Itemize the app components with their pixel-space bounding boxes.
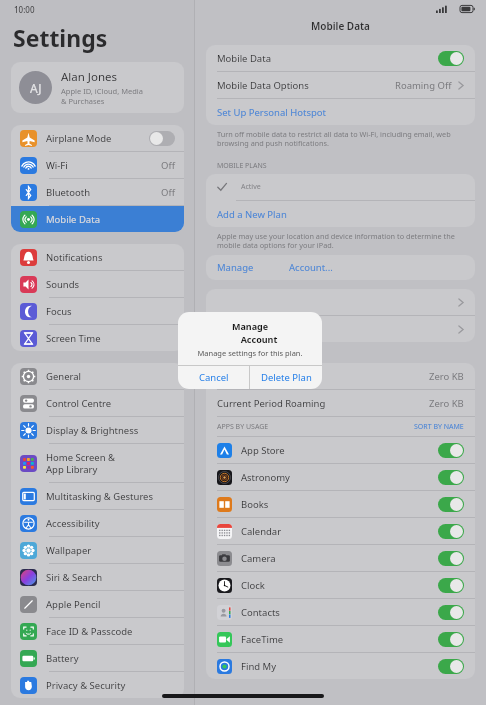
staticText: Account... — [289, 261, 333, 274]
button[interactable]: Focus — [11, 298, 184, 324]
button[interactable]: Account... — [264, 261, 343, 274]
button[interactable]: Wallpaper — [11, 537, 184, 563]
button[interactable]: Display & Brightness — [11, 417, 184, 443]
staticText: Clock — [241, 579, 438, 592]
button[interactable]: On — [438, 659, 464, 674]
button[interactable]: Calendar — [206, 518, 475, 544]
button[interactable] — [206, 316, 475, 342]
button[interactable]: Off — [149, 131, 175, 146]
staticText: Mobile Data — [46, 213, 175, 226]
staticText: Books — [241, 498, 438, 511]
staticText: Account — [204, 333, 314, 345]
button[interactable]: On — [438, 578, 464, 593]
button[interactable]: On — [438, 497, 464, 512]
staticText: Cancel — [199, 371, 229, 384]
button[interactable]: Bluetooth — [11, 179, 184, 205]
button[interactable]: Sounds — [11, 271, 184, 297]
staticText: Astronomy — [241, 471, 438, 484]
button[interactable]: On — [438, 443, 464, 458]
button[interactable]: On — [438, 551, 464, 566]
staticText: Sounds — [46, 278, 175, 291]
staticText: Multitasking & Gestures — [46, 490, 175, 503]
button[interactable]: FaceTime — [206, 626, 475, 652]
button[interactable]: Screen Time — [11, 325, 184, 351]
staticText: Manage — [186, 320, 314, 332]
staticText: Current Period — [217, 370, 429, 383]
staticText: Siri & Search — [46, 571, 175, 584]
button[interactable]: Wi-Fi — [11, 152, 184, 178]
button[interactable]: Apple Pencil — [11, 591, 184, 617]
button[interactable]: On — [438, 524, 464, 539]
staticText: Face ID & Passcode — [46, 625, 175, 638]
button[interactable]: Add a New Plan — [206, 201, 475, 227]
staticText: Off — [161, 186, 175, 199]
staticText: Manage — [217, 261, 254, 274]
staticText: Control Centre — [46, 397, 175, 410]
button[interactable]: Manage — [206, 261, 264, 274]
button[interactable]: Control Centre — [11, 390, 184, 416]
staticText: Turn off mobile data to restrict all dat… — [217, 129, 451, 149]
button[interactable]: Contacts — [206, 599, 475, 625]
button[interactable]: AJ — [11, 62, 184, 113]
button[interactable]: On — [438, 605, 464, 620]
button[interactable]: Books — [206, 491, 475, 517]
button[interactable]: Current Period — [206, 363, 475, 389]
staticText: Accessibility — [46, 517, 175, 530]
staticText: Apple ID, iCloud, Media & Purchases — [61, 86, 143, 106]
button[interactable]: Privacy & Security — [11, 672, 184, 698]
button[interactable]: Mobile Data — [11, 206, 184, 232]
button[interactable]: Active — [206, 174, 475, 200]
button[interactable]: Notifications — [11, 244, 184, 270]
button[interactable]: SORT BY NAME — [414, 422, 464, 432]
staticText: Settings — [13, 22, 108, 53]
button[interactable]: Delete Plan — [250, 366, 322, 389]
button[interactable]: Astronomy — [206, 464, 475, 490]
button[interactable]: Mobile Data — [206, 45, 475, 71]
button[interactable]: Cancel — [178, 366, 249, 389]
button[interactable]: On — [438, 632, 464, 647]
staticText: Privacy & Security — [46, 679, 175, 692]
button[interactable]: Accessibility — [11, 510, 184, 536]
staticText: Battery — [46, 652, 175, 665]
button[interactable]: Camera — [206, 545, 475, 571]
button[interactable]: Airplane Mode — [11, 125, 184, 151]
button[interactable]: Home Screen & App Library — [11, 444, 184, 482]
staticText: Camera — [241, 552, 438, 565]
staticText: Home Screen & App Library — [46, 451, 175, 476]
staticText: Wallpaper — [46, 544, 175, 557]
staticText: Find My — [241, 660, 438, 673]
button[interactable]: Set Up Personal Hotspot — [206, 99, 475, 125]
button[interactable]: Battery — [11, 645, 184, 671]
staticText: AJ — [30, 80, 42, 96]
button[interactable]: App Store — [206, 437, 475, 463]
staticText: APPS BY USAGE — [217, 422, 414, 432]
staticText: Set Up Personal Hotspot — [217, 106, 326, 119]
staticText: Bluetooth — [46, 186, 161, 199]
button[interactable]: Find My — [206, 653, 475, 679]
button[interactable]: Mobile Data Options — [206, 72, 475, 98]
button[interactable] — [206, 289, 475, 315]
staticText: Zero KB — [429, 370, 464, 383]
button[interactable]: On — [438, 470, 464, 485]
staticText: Zero KB — [429, 397, 464, 410]
button[interactable]: Current Period Roaming — [206, 390, 475, 416]
staticText: Screen Time — [46, 332, 175, 345]
staticText: Notifications — [46, 251, 175, 264]
staticText: App Store — [241, 444, 438, 457]
staticText: Apple may use your location and device i… — [217, 231, 455, 251]
button[interactable]: Multitasking & Gestures — [11, 483, 184, 509]
staticText: Display & Brightness — [46, 424, 175, 437]
staticText: FaceTime — [241, 633, 438, 646]
staticText: Contacts — [241, 606, 438, 619]
staticText: MOBILE DATA — [217, 350, 262, 360]
button[interactable]: Siri & Search — [11, 564, 184, 590]
button[interactable]: Clock — [206, 572, 475, 598]
button[interactable]: General — [11, 363, 184, 389]
staticText: Mobile Data — [217, 52, 438, 65]
staticText: Mobile Data Options — [217, 79, 395, 92]
button[interactable]: Face ID & Passcode — [11, 618, 184, 644]
staticText: Roaming Off — [395, 79, 452, 92]
staticText: Manage settings for this plan. — [186, 348, 314, 358]
staticText: Off — [161, 159, 175, 172]
button[interactable]: On — [438, 51, 464, 66]
